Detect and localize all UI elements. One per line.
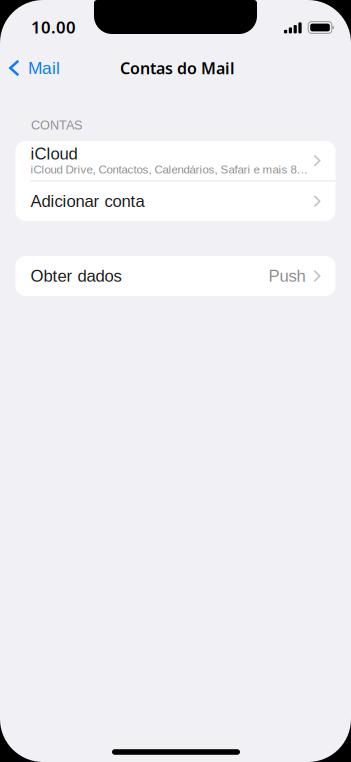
staticText: iCloud Drive, Contactos, Calendários, Sa…: [30, 163, 307, 176]
staticText: 10.00: [31, 16, 76, 38]
button[interactable]: iCloud: [15, 141, 335, 180]
staticText: CONTAS: [31, 118, 82, 132]
button[interactable]: Mail: [0, 51, 72, 85]
staticText: Adicionar conta: [30, 192, 144, 210]
button[interactable]: Obter dados: [15, 256, 335, 296]
staticText: Push: [268, 267, 305, 285]
staticText: Contas do Mail: [120, 57, 235, 79]
staticText: Obter dados: [30, 267, 121, 285]
button[interactable]: Adicionar conta: [15, 181, 335, 221]
staticText: iCloud: [30, 144, 77, 163]
staticText: Mail: [28, 58, 60, 78]
